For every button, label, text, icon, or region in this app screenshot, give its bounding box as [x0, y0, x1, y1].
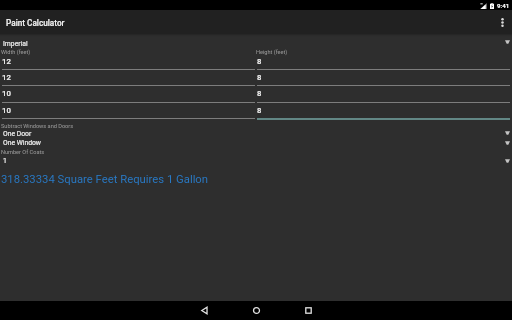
staticText: Height (feet)	[256, 49, 288, 56]
staticText: 8	[257, 73, 262, 82]
button[interactable]	[257, 71, 510, 86]
button[interactable]: Back	[178, 301, 230, 320]
staticText: 318.33334 Square Feet Requires 1 Gallon	[1, 173, 209, 186]
button[interactable]	[2, 71, 255, 86]
button[interactable]	[0, 138, 512, 149]
staticText: Subtract Windows and Doors	[1, 123, 74, 130]
staticText: 10	[2, 89, 11, 98]
button[interactable]	[2, 88, 255, 103]
staticText: One Window	[3, 139, 41, 147]
staticText: 10	[2, 106, 11, 115]
button[interactable]	[257, 88, 510, 103]
button[interactable]: More options	[492, 10, 512, 34]
staticText: 8	[257, 57, 262, 66]
staticText: 8	[257, 106, 262, 115]
button[interactable]	[0, 155, 512, 166]
button[interactable]	[257, 55, 510, 70]
staticText: 12	[2, 73, 11, 82]
staticText: Paint Calculator	[6, 18, 65, 28]
staticText: 9:41	[497, 2, 510, 9]
button[interactable]	[2, 55, 255, 70]
staticText: Width (feet)	[1, 49, 31, 56]
button[interactable]	[257, 104, 510, 119]
button[interactable]	[0, 36, 512, 48]
button[interactable]: Recents	[282, 301, 334, 320]
staticText: Number Of Coats	[1, 149, 45, 156]
staticText: 8	[257, 89, 262, 98]
staticText: One Door	[3, 130, 32, 138]
staticText: 1	[3, 157, 7, 165]
staticText: 12	[2, 57, 11, 66]
button[interactable]	[0, 127, 512, 138]
button[interactable]	[2, 104, 255, 119]
staticText: Imperial	[3, 40, 28, 48]
button[interactable]: Home	[230, 301, 282, 320]
